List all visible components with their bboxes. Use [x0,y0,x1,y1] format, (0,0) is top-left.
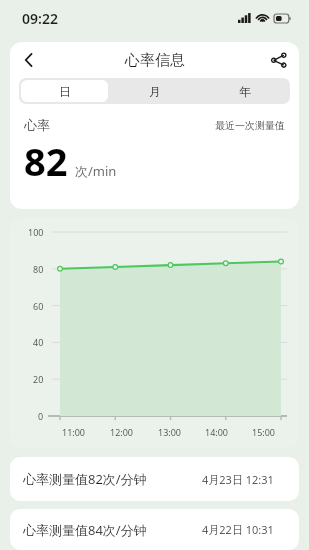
staticText: 100 [28,226,44,238]
staticText: 82 [24,135,68,187]
staticText: 60 [33,300,44,312]
staticText: 15:00 [252,426,276,438]
staticText: 80 [33,263,44,275]
staticText: 心率测量值84次/分钟 [23,521,147,539]
button[interactable]: 月 [112,80,198,102]
button[interactable]: Share [259,42,299,78]
staticText: 14:00 [205,426,229,438]
staticText: 13:00 [158,426,182,438]
button[interactable]: 心率测量值82次/分钟 [10,457,299,501]
staticText: 09:22 [22,9,58,28]
staticText: 最近一次测量值 [215,119,285,132]
staticText: 心率信息 [125,51,185,70]
staticText: 4月22日 10:31 [202,522,286,537]
staticText: 次/min [75,162,117,180]
staticText: 月 [149,84,161,99]
staticText: 年 [239,84,251,99]
staticText: 日 [59,84,71,99]
staticText: 40 [33,336,44,348]
button[interactable]: 心率测量值84次/分钟 [10,509,299,550]
staticText: 11:00 [62,426,86,438]
staticText: 0 [38,410,44,422]
button[interactable]: 日 [21,80,108,102]
button[interactable]: Back [10,42,48,78]
button[interactable]: 年 [202,80,288,102]
staticText: 心率 [24,117,50,133]
staticText: 20 [33,373,44,385]
staticText: 4月23日 12:31 [202,472,286,487]
staticText: 心率测量值82次/分钟 [23,470,147,488]
staticText: 12:00 [110,426,134,438]
